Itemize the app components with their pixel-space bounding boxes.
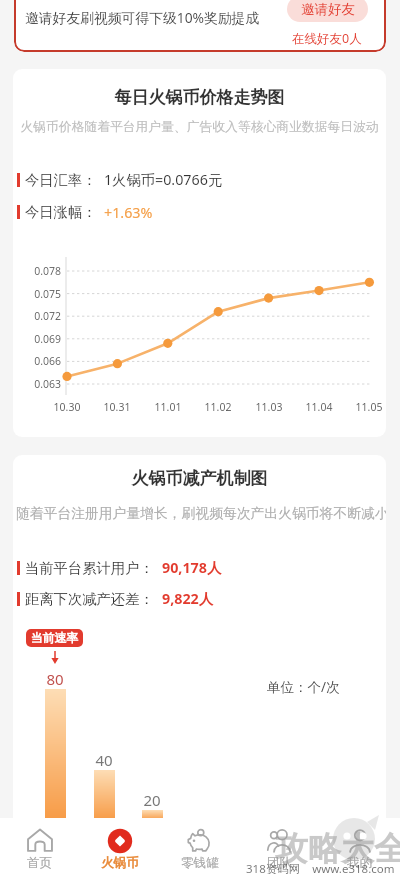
staticText: 11.01: [148, 400, 188, 414]
button[interactable]: 邀请好友: [287, 0, 368, 22]
other: 火锅币: [107, 828, 133, 854]
staticText: 我的: [347, 855, 373, 871]
staticText: 距离下次减产还差：: [25, 589, 162, 609]
staticText: 首页: [27, 855, 53, 871]
staticText: 0.063: [15, 377, 61, 391]
other: 团队: [267, 828, 293, 854]
staticText: 0.078: [15, 264, 61, 278]
staticText: 单位：个/次: [267, 678, 340, 696]
staticText: 今日涨幅：: [25, 202, 104, 222]
staticText: 318资码网 www.e318.com: [246, 861, 395, 874]
staticText: 火锅币价格随着平台用户量、广告收入等核心商业数据每日波动: [13, 119, 386, 135]
button[interactable]: 火锅币: [80, 822, 160, 871]
staticText: 每日火锅币价格走势图: [13, 87, 386, 108]
staticText: 10.31: [97, 400, 137, 414]
staticText: 邀请好友: [301, 1, 355, 18]
staticText: 11.02: [198, 400, 238, 414]
staticText: 80: [35, 669, 75, 689]
staticText: 火锅币减产机制图: [13, 468, 386, 489]
staticText: 火锅币: [101, 855, 139, 871]
staticText: +1.63%: [104, 203, 153, 222]
staticText: 40: [84, 750, 124, 770]
button[interactable]: 我的: [320, 822, 400, 871]
staticText: 10.30: [47, 400, 87, 414]
staticText: 9,822人: [162, 589, 214, 609]
staticText: 0.069: [15, 332, 61, 346]
staticText: 在线好友0人: [292, 30, 362, 47]
button[interactable]: 当前速率: [26, 629, 83, 647]
button[interactable]: 首页: [0, 822, 80, 871]
staticText: 今日汇率： 1火锅币=0.0766元: [25, 170, 223, 190]
other: 零钱罐: [187, 828, 213, 854]
staticText: 当前平台累计用户：: [25, 558, 162, 578]
other: 首页: [27, 828, 53, 854]
staticText: 0.075: [15, 287, 61, 301]
staticText: 当前速率: [31, 631, 79, 646]
staticText: 攻略大全: [275, 828, 400, 870]
staticText: 0.072: [15, 309, 61, 323]
button[interactable]: 邀请好友刷视频可得下级10%奖励提成: [14, 0, 386, 52]
staticText: 零钱罐: [181, 855, 219, 871]
staticText: 团队: [267, 855, 293, 871]
staticText: 11.04: [299, 400, 339, 414]
button[interactable]: 团队: [240, 822, 320, 871]
staticText: 20: [132, 790, 172, 810]
staticText: 0.066: [15, 354, 61, 368]
staticText: 90,178人: [162, 558, 222, 578]
button[interactable]: 零钱罐: [160, 822, 240, 871]
other: 我的: [347, 828, 373, 854]
staticText: 随着平台注册用户量增长，刷视频每次产出火锅币将不断减小: [16, 505, 386, 522]
staticText: 11.05: [349, 400, 386, 414]
staticText: 11.03: [249, 400, 289, 414]
staticText: 邀请好友刷视频可得下级10%奖励提成: [25, 8, 260, 27]
